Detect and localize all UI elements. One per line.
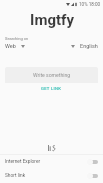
staticText: Short link [5,173,26,179]
button[interactable]: Write something [5,67,98,83]
staticText: 10% 18:00 [79,2,101,7]
button[interactable]: Short link [0,169,103,183]
staticText: English [80,43,98,49]
staticText: Write something [33,72,71,78]
button[interactable]: GET LINK [36,85,67,92]
button[interactable]: English [71,43,98,49]
button[interactable]: Web [5,43,25,49]
staticText: Searching on [5,36,29,41]
staticText: GET LINK [41,86,62,91]
staticText: Web [5,43,16,49]
staticText: Internet Explorer [5,159,41,165]
button[interactable]: Internet Explorer [0,155,103,169]
staticText: Imgtfy [30,11,74,29]
